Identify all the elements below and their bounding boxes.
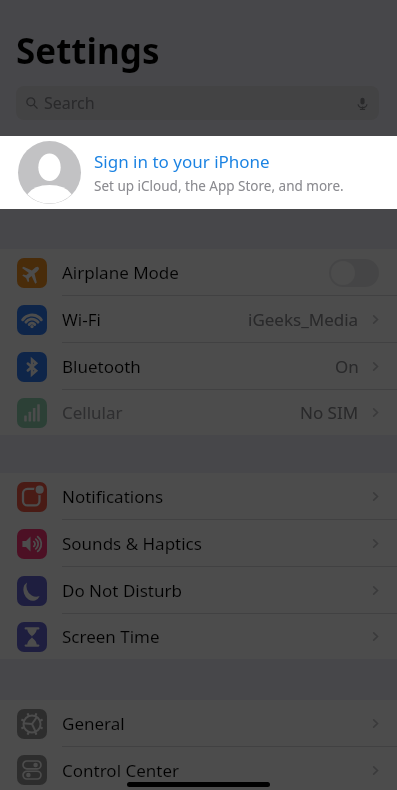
staticText: On	[335, 355, 359, 378]
button[interactable]: Cellular	[0, 390, 397, 435]
staticText: Cellular	[62, 401, 123, 424]
staticText: Search	[44, 92, 95, 114]
button[interactable]: Bluetooth	[0, 343, 397, 390]
staticText: iGeeks_Media	[248, 308, 359, 331]
staticText: Notifications	[62, 485, 164, 508]
staticText: General	[62, 712, 125, 735]
staticText: No SIM	[300, 401, 359, 424]
staticText: Bluetooth	[62, 355, 141, 378]
button[interactable]: General	[0, 700, 397, 747]
other: Voice search	[356, 97, 369, 110]
staticText: Wi-Fi	[62, 308, 101, 331]
staticText: Screen Time	[62, 625, 160, 648]
button[interactable]: Screen Time	[0, 614, 397, 659]
button[interactable]: Control Center	[0, 747, 397, 790]
staticText: Sign in to your iPhone	[94, 150, 270, 173]
staticText: Do Not Disturb	[62, 579, 182, 602]
staticText: Airplane Mode	[62, 261, 179, 284]
staticText: Sounds & Haptics	[62, 532, 202, 555]
button[interactable]: Sounds & Haptics	[0, 520, 397, 567]
staticText: Settings	[16, 27, 160, 75]
button[interactable]: Notifications	[0, 473, 397, 520]
button[interactable]: Sign in to your iPhone	[0, 136, 397, 209]
button[interactable]: Wi-Fi	[0, 296, 397, 343]
button[interactable]: Search	[16, 86, 379, 120]
staticText: Set up iCloud, the App Store, and more.	[94, 177, 344, 195]
button[interactable]: Do Not Disturb	[0, 567, 397, 614]
button[interactable]: Airplane Mode	[0, 249, 397, 296]
staticText: Control Center	[62, 759, 180, 782]
